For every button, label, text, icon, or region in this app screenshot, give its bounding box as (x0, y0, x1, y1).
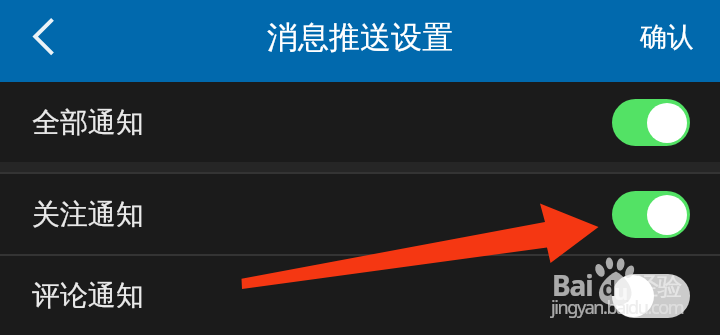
staticText: Bai (552, 266, 593, 304)
button[interactable]: 评论通知 (0, 256, 720, 335)
button[interactable]: 全部通知 (0, 82, 720, 162)
staticText: u (614, 276, 629, 306)
button[interactable]: 确认 (614, 8, 720, 74)
button[interactable]: Back (8, 0, 78, 82)
staticText: 关注通知 (32, 197, 144, 232)
button[interactable]: 关注通知 (0, 174, 720, 254)
button[interactable]: Toggle 全部通知 (612, 99, 690, 146)
staticText: 全部通知 (32, 105, 144, 140)
staticText: 经验 (634, 271, 682, 302)
staticText: 确认 (640, 20, 694, 54)
button[interactable]: Toggle 评论通知 (612, 274, 690, 318)
staticText: 消息推送设置 (267, 18, 453, 57)
staticText: jingyan.baidu.com (551, 295, 684, 320)
staticText: 评论通知 (32, 278, 144, 313)
button[interactable]: Toggle 关注通知 (612, 191, 690, 238)
staticText: d (602, 272, 616, 302)
